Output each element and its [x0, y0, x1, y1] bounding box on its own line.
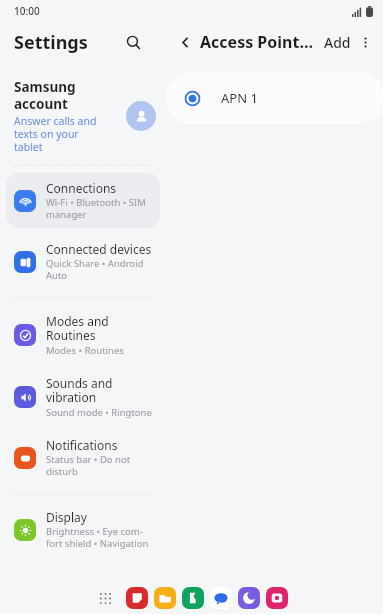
button[interactable]: Samsung Notes [126, 587, 148, 609]
button[interactable]: Add [322, 29, 353, 56]
button[interactable]: All apps [93, 586, 117, 610]
button[interactable]: APN 1 [166, 72, 383, 124]
staticText: Sounds and vibration [46, 375, 113, 406]
button[interactable]: Back [172, 29, 198, 55]
staticText: APN 1 [221, 89, 258, 107]
staticText: 10:00 [14, 4, 40, 18]
button[interactable]: Modes and Routines [6, 306, 160, 364]
staticText: Notifications [46, 437, 118, 453]
staticText: Access Point Na... [200, 31, 317, 53]
staticText: Quick Share • Android Auto [46, 257, 144, 282]
staticText: Sound mode • Ringtone [46, 406, 152, 419]
button[interactable]: Messages [210, 587, 232, 609]
staticText: Display [46, 509, 87, 525]
button[interactable]: Samsung Internet [238, 587, 260, 609]
button[interactable]: Connected devices [6, 234, 160, 289]
button[interactable]: More options [353, 30, 377, 54]
staticText: Settings [14, 30, 88, 55]
button[interactable]: Display [6, 502, 160, 557]
button[interactable]: Search [118, 27, 148, 57]
staticText: Samsung account [14, 78, 76, 113]
staticText: Answer calls and texts on your tablet [14, 114, 97, 154]
staticText: Wi-Fi • Bluetooth • SIM manager [46, 196, 146, 221]
button[interactable]: Connections [6, 173, 160, 228]
staticText: Status bar • Do not disturb [46, 453, 131, 478]
button[interactable]: Notifications [6, 430, 160, 485]
staticText: Connections [46, 180, 117, 196]
button[interactable]: My Files [154, 587, 176, 609]
staticText: Connected devices [46, 241, 152, 257]
staticText: Modes • Routines [46, 344, 124, 357]
staticText: Brightness • Eye com- fort shield • Navi… [46, 525, 149, 550]
staticText: Add [324, 33, 351, 52]
staticText: Modes and Routines [46, 313, 109, 344]
button[interactable]: Samsung account [0, 76, 166, 156]
button[interactable]: Phone [182, 587, 204, 609]
button[interactable]: Sounds and vibration [6, 368, 160, 426]
button[interactable]: Camera [266, 587, 288, 609]
